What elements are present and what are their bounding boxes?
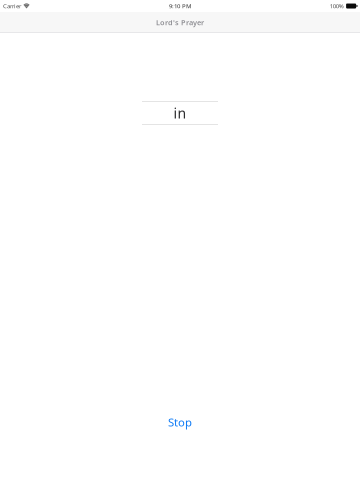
button[interactable]: Stop <box>150 411 210 433</box>
staticText: Lord's Prayer <box>156 17 204 27</box>
staticText: 9:10 PM <box>169 2 192 10</box>
staticText: in <box>173 103 186 123</box>
staticText: 100% <box>330 2 344 10</box>
staticText: Stop <box>168 414 192 430</box>
staticText: Carrier <box>3 2 21 10</box>
